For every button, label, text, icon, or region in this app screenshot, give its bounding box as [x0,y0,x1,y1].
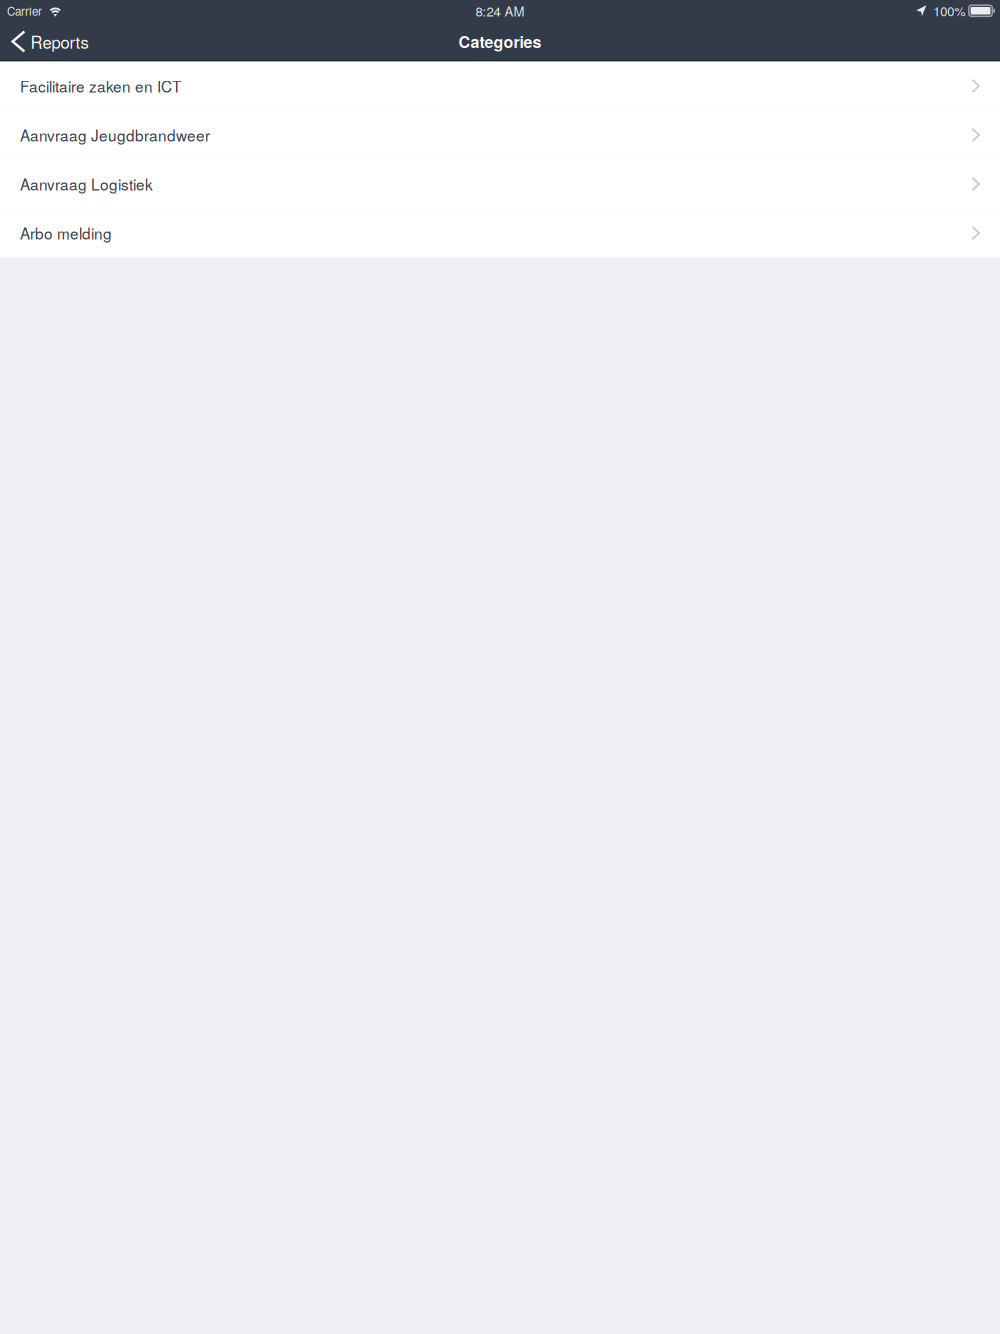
staticText: 100% [933,2,965,20]
staticText: 8:24 AM [475,1,524,20]
button[interactable]: Facilitaire zaken en ICT [0,61,1000,110]
button[interactable]: Arbo melding [0,208,1000,257]
button[interactable]: Reports [0,21,98,61]
staticText: Facilitaire zaken en ICT [20,75,181,97]
staticText: Carrier [7,2,42,19]
staticText: Reports [30,30,88,53]
staticText: Categories [458,30,541,53]
button[interactable]: Aanvraag Jeugdbrandweer [0,110,1000,159]
staticText: Aanvraag Logistiek [20,173,153,195]
staticText: Arbo melding [20,222,112,244]
button[interactable]: Aanvraag Logistiek [0,159,1000,208]
staticText: Aanvraag Jeugdbrandweer [20,124,210,146]
